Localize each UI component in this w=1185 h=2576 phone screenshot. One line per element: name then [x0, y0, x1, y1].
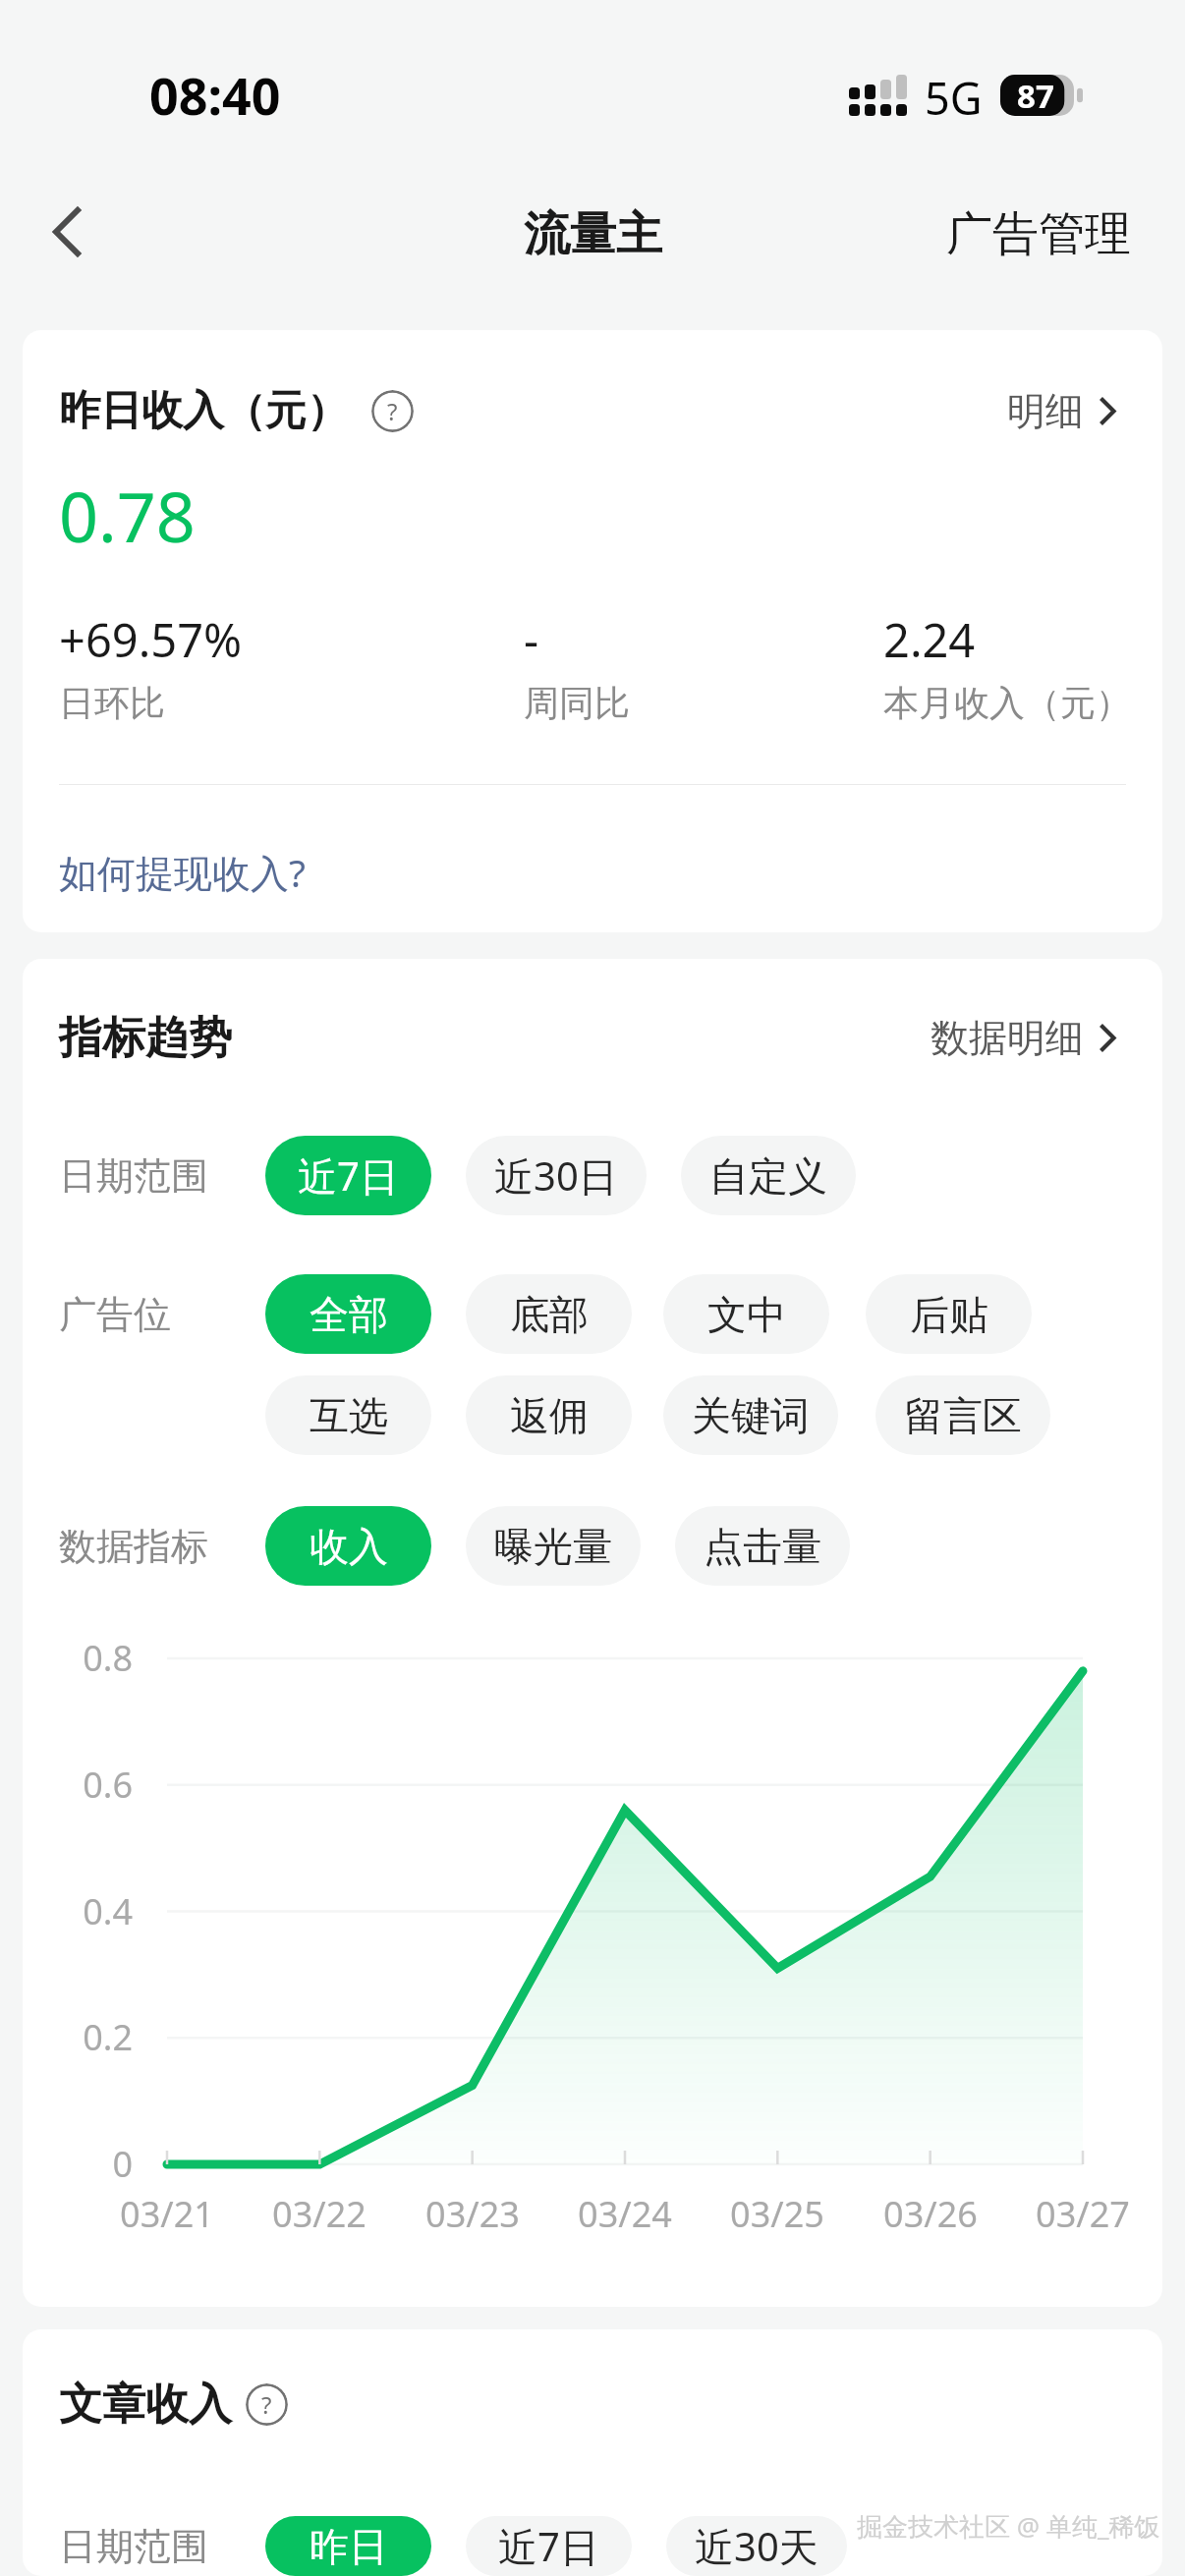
staticText: 5G	[925, 68, 983, 128]
button[interactable]: 留言区	[875, 1375, 1050, 1455]
staticText: 广告位	[59, 1291, 265, 1338]
staticText: 0.78	[59, 469, 196, 562]
staticText: 文中	[707, 1290, 786, 1339]
button[interactable]: 自定义	[681, 1136, 856, 1215]
button[interactable]: 近7日	[466, 2516, 632, 2576]
button[interactable]: 明细	[987, 377, 1116, 445]
staticText: 本月收入（元）	[883, 681, 1131, 725]
staticText: 掘金技术社区 @ 单纯_稀饭	[857, 2508, 1160, 2544]
staticText: 昨日收入（元）	[59, 385, 348, 437]
staticText: -	[524, 608, 539, 671]
staticText: +69.57%	[59, 608, 243, 671]
staticText: 全部	[310, 1290, 388, 1339]
staticText: 返佣	[510, 1391, 589, 1440]
staticText: 近30日	[494, 1148, 618, 1203]
staticText: 03/24	[546, 2190, 704, 2238]
button[interactable]: 曝光量	[466, 1506, 641, 1586]
button[interactable]: 广告管理	[931, 190, 1146, 279]
staticText: 近30天	[695, 2519, 818, 2573]
button[interactable]: 文中	[663, 1274, 829, 1354]
staticText: 自定义	[709, 1151, 827, 1201]
staticText: 87	[1017, 74, 1054, 115]
staticText: 流量主	[524, 205, 662, 263]
button[interactable]: 全部	[265, 1274, 431, 1354]
button[interactable]: 近30日	[466, 1136, 647, 1215]
staticText: 明细	[1007, 387, 1084, 435]
staticText: 近7日	[298, 1148, 399, 1203]
staticText: 数据指标	[59, 1523, 265, 1570]
staticText: 日环比	[59, 681, 165, 725]
staticText: 后贴	[910, 1290, 988, 1339]
button[interactable]: Help: article income	[246, 2383, 288, 2426]
staticText: 昨日	[310, 2522, 388, 2571]
staticText: 收入	[310, 1522, 388, 1571]
button[interactable]: 返佣	[466, 1375, 632, 1455]
staticText: 03/21	[88, 2190, 246, 2238]
staticText: 03/23	[394, 2190, 551, 2238]
staticText: 点击量	[704, 1522, 821, 1571]
staticText: 留言区	[904, 1391, 1022, 1440]
button[interactable]: 底部	[466, 1274, 632, 1354]
button[interactable]: 互选	[265, 1375, 431, 1455]
staticText: 0.4	[25, 1887, 133, 1935]
button[interactable]: 点击量	[675, 1506, 850, 1586]
staticText: 0.6	[25, 1761, 133, 1809]
staticText: 03/25	[699, 2190, 856, 2238]
staticText: 周同比	[524, 681, 630, 725]
staticText: 指标趋势	[59, 1011, 232, 1065]
button[interactable]: 收入	[265, 1506, 431, 1586]
staticText: 0.8	[25, 1634, 133, 1682]
button[interactable]: Back	[0, 172, 122, 317]
staticText: 如何提现收入?	[59, 846, 306, 898]
staticText: 日期范围	[59, 2523, 265, 2570]
button[interactable]: 近30天	[666, 2516, 847, 2576]
staticText: 底部	[510, 1290, 589, 1339]
staticText: 互选	[310, 1391, 388, 1440]
button[interactable]: 关键词	[663, 1375, 838, 1455]
staticText: 03/26	[852, 2190, 1009, 2238]
staticText: 曝光量	[494, 1522, 612, 1571]
staticText: 数据明细	[931, 1014, 1084, 1062]
staticText: 广告管理	[946, 205, 1131, 263]
staticText: 03/22	[241, 2190, 398, 2238]
staticText: 0	[25, 2140, 133, 2188]
button[interactable]: 如何提现收入?	[59, 846, 306, 898]
staticText: 关键词	[692, 1391, 810, 1440]
staticText: 2.24	[883, 608, 976, 671]
button[interactable]: 昨日	[265, 2516, 431, 2576]
staticText: 文章收入	[59, 2378, 232, 2432]
staticText: ?	[261, 2388, 272, 2421]
staticText: 日期范围	[59, 1152, 265, 1200]
staticText: 0.2	[25, 2013, 133, 2061]
staticText: 08:40	[149, 60, 281, 130]
staticText: 03/27	[1004, 2190, 1161, 2238]
button[interactable]: 近7日	[265, 1136, 431, 1215]
staticText: 近7日	[498, 2519, 599, 2573]
button[interactable]: 数据明细	[911, 1004, 1116, 1072]
button[interactable]: Help: yesterday income	[371, 390, 414, 432]
button[interactable]: 后贴	[866, 1274, 1032, 1354]
staticText: ?	[387, 395, 398, 427]
